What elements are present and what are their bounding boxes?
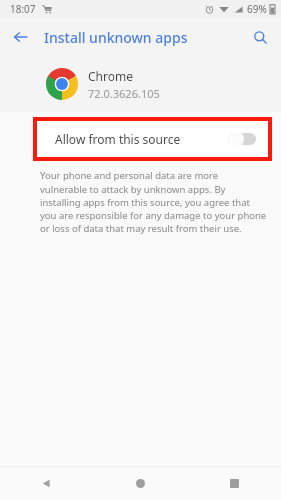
button[interactable]: Back	[6, 22, 36, 52]
button[interactable]: Back	[0, 467, 93, 500]
staticText: 69%	[247, 2, 267, 16]
staticText: Allow from this source	[55, 131, 181, 147]
button[interactable]: Search	[245, 22, 275, 52]
staticText: Install unknown apps	[44, 28, 188, 47]
button[interactable]: Allow from this source	[37, 121, 268, 157]
staticText: 18:07	[10, 2, 36, 16]
button[interactable]: Recent apps	[187, 467, 281, 500]
staticText: Chrome	[88, 68, 133, 84]
staticText: Your phone and personal data are more vu…	[40, 169, 267, 234]
staticText: 72.0.3626.105	[88, 86, 160, 101]
button[interactable]: Home	[93, 467, 187, 500]
